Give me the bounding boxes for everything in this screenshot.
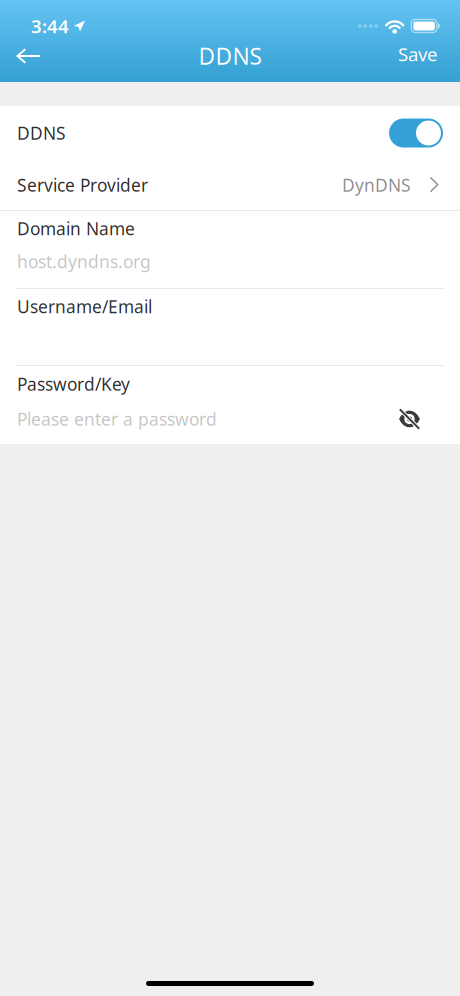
staticText: Please enter a password — [17, 407, 217, 430]
staticText: Password/Key — [17, 372, 130, 395]
button[interactable]: DDNS on — [389, 110, 460, 155]
staticText: Domain Name — [17, 217, 135, 240]
button[interactable]: Service Provider — [0, 160, 460, 210]
staticText: Service Provider — [17, 173, 148, 196]
staticText: DDNS — [198, 41, 261, 71]
staticText: host.dyndns.org — [17, 250, 151, 273]
staticText: 3:44 — [31, 14, 69, 38]
staticText: DDNS — [17, 121, 66, 144]
button[interactable]: Show password — [382, 404, 435, 434]
button[interactable]: Save — [378, 35, 460, 77]
button[interactable]: Back — [0, 39, 56, 72]
staticText: Save — [398, 42, 438, 66]
staticText: Username/Email — [17, 295, 152, 318]
staticText: DynDNS — [342, 173, 411, 196]
